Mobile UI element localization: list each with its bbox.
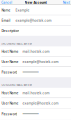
button[interactable]: Next xyxy=(62,0,71,5)
staticText: User Name xyxy=(1,60,18,64)
button[interactable]: User Name xyxy=(0,57,71,67)
button[interactable]: Password xyxy=(0,108,71,120)
staticText: mail.hostek.com xyxy=(22,91,49,95)
staticText: User Name xyxy=(1,101,18,105)
button[interactable]: Email xyxy=(0,15,71,26)
button[interactable]: User Name xyxy=(0,98,71,108)
staticText: Password xyxy=(1,112,17,116)
staticText: Cancel xyxy=(1,0,12,5)
staticText: •••••••••••••••• xyxy=(22,70,38,74)
staticText: Name xyxy=(1,8,10,12)
staticText: Description xyxy=(1,29,19,33)
button[interactable]: Host Name xyxy=(0,46,71,57)
staticText: Password xyxy=(1,70,17,74)
staticText: example@hostek.com xyxy=(15,18,51,23)
button[interactable]: Password xyxy=(0,67,71,77)
staticText: Host Name xyxy=(1,91,18,95)
staticText: Next xyxy=(63,0,70,5)
staticText: INCOMING MAIL SERVER xyxy=(1,42,32,45)
staticText: Host Name xyxy=(1,49,18,54)
button[interactable]: Cancel xyxy=(0,0,13,5)
staticText: mail.hostek.com xyxy=(22,49,49,54)
button[interactable]: Description xyxy=(0,26,71,36)
button[interactable]: Name xyxy=(0,5,71,15)
staticText: Email xyxy=(1,18,10,23)
staticText: example@hostek.com xyxy=(22,101,58,105)
staticText: New Account xyxy=(24,0,46,5)
staticText: example@hostek.com xyxy=(22,60,58,64)
staticText: Example xyxy=(15,8,29,12)
staticText: •••••••••••••••• xyxy=(22,112,38,116)
button[interactable]: Host Name xyxy=(0,88,71,98)
staticText: OUTGOING MAIL SERVER xyxy=(1,83,32,87)
